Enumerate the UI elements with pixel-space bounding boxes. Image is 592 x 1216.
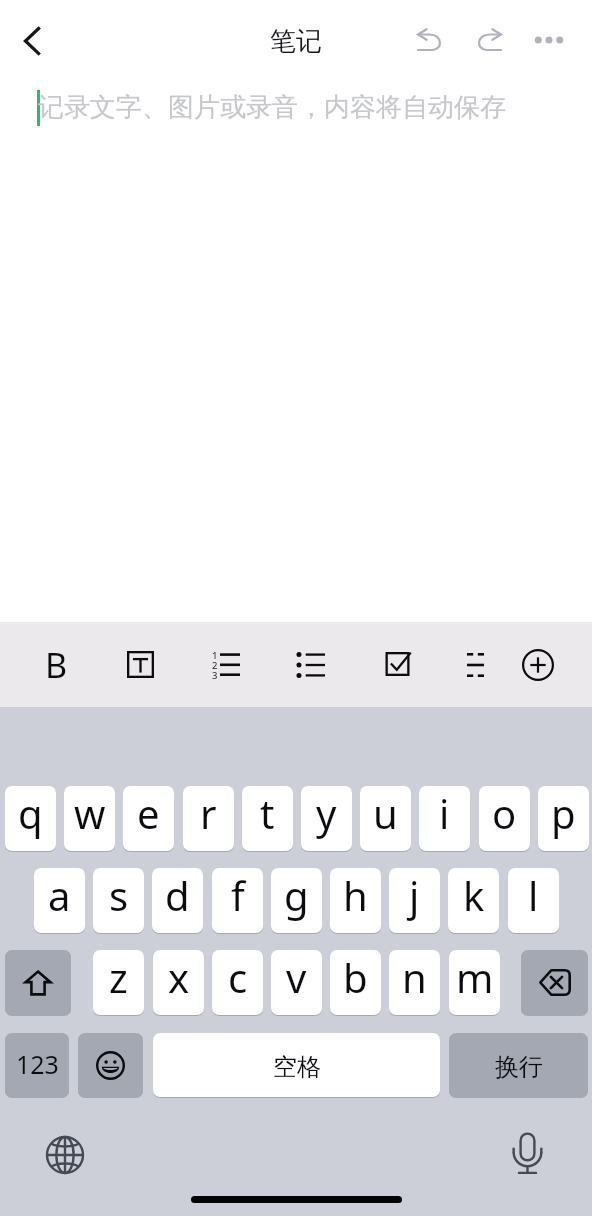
button[interactable]: Checklist [367,622,427,707]
button[interactable]: n [389,950,440,1015]
staticText: e [137,786,160,840]
button[interactable]: g [271,868,322,933]
button[interactable]: Bulleted list [281,622,341,707]
staticText: y [316,786,337,840]
button[interactable]: p [538,786,589,851]
button[interactable]: Voice input [503,1130,551,1178]
staticText: f [231,868,245,922]
button[interactable]: Backspace [521,950,588,1015]
button[interactable]: More options [531,22,567,58]
button[interactable]: Back [8,17,56,65]
staticText: u [373,786,398,840]
staticText: j [409,868,420,922]
staticText: r [200,786,217,840]
button[interactable]: k [448,868,499,933]
button[interactable]: i [419,786,470,851]
staticText: c [228,950,248,1004]
button[interactable]: Numbers [5,1033,69,1097]
button[interactable]: Change keyboard language [41,1131,89,1179]
button[interactable]: Emoji [78,1033,143,1097]
button[interactable]: Undo [406,16,454,64]
staticText: 笔记 [270,25,322,58]
button[interactable]: Text style [110,622,170,707]
button[interactable]: c [212,950,263,1015]
staticText: k [463,868,485,922]
staticText: v [286,950,307,1004]
staticText: h [343,868,368,922]
staticText: l [528,868,539,922]
button[interactable]: z [93,950,144,1015]
button[interactable]: h [330,868,381,933]
button[interactable]: Bold [26,622,86,707]
staticText: 1 [212,649,218,662]
button[interactable]: Divider [445,622,505,707]
staticText: B [45,642,68,688]
button[interactable]: Numbered list [195,622,255,707]
button[interactable]: Shift [5,950,71,1015]
staticText: o [492,786,517,840]
staticText: 空格 [273,1052,321,1082]
button[interactable]: 换行 [449,1033,588,1097]
button[interactable]: y [301,786,352,851]
staticText: 换行 [495,1052,543,1082]
staticText: i [439,786,450,840]
button[interactable]: o [479,786,530,851]
staticText: z [109,950,128,1004]
button[interactable]: s [93,868,144,933]
staticText: 3 [212,669,218,682]
staticText: 记录文字、图片或录音，内容将自动保存 [38,91,506,124]
staticText: x [168,950,190,1004]
button[interactable]: x [153,950,204,1015]
staticText: n [402,950,427,1004]
staticText: 2 [212,659,218,672]
button[interactable]: u [360,786,411,851]
button[interactable]: w [64,786,115,851]
staticText: m [456,950,494,1004]
button[interactable]: r [183,786,234,851]
staticText: 123 [16,1047,59,1081]
button[interactable]: j [389,868,440,933]
button[interactable]: l [508,868,559,933]
staticText: g [284,868,309,922]
button[interactable]: 空格 [153,1033,440,1097]
staticText: s [109,868,129,922]
button[interactable]: q [5,786,56,851]
button[interactable]: e [123,786,174,851]
staticText: a [48,868,71,922]
button[interactable]: t [242,786,293,851]
button[interactable]: m [449,950,500,1015]
button[interactable]: Insert [508,622,568,707]
staticText: b [343,950,368,1004]
button[interactable]: Redo [465,16,513,64]
button[interactable]: v [271,950,322,1015]
staticText: d [165,868,190,922]
button[interactable]: d [152,868,203,933]
button[interactable]: f [212,868,263,933]
button[interactable]: b [330,950,381,1015]
staticText: p [551,786,576,840]
staticText: t [260,786,275,840]
staticText: q [18,786,43,840]
staticText: w [74,786,106,840]
button[interactable]: a [34,868,85,933]
